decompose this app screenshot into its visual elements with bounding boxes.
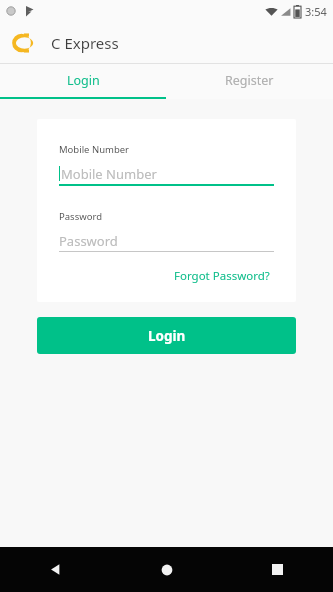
staticText: Password xyxy=(59,210,102,223)
staticText: Mobile Number xyxy=(61,165,157,183)
staticText: Forgot Password? xyxy=(174,268,270,284)
button[interactable]: Register xyxy=(166,64,333,97)
button[interactable]: Login xyxy=(0,64,166,97)
staticText: C Express xyxy=(51,33,119,53)
staticText: 3:54 xyxy=(305,4,327,19)
staticText: Register xyxy=(225,72,274,89)
button[interactable]: Login xyxy=(37,317,296,354)
button[interactable]: Back xyxy=(0,547,111,592)
button[interactable]: Home xyxy=(111,547,222,592)
staticText: Password xyxy=(59,232,118,250)
button[interactable]: Password xyxy=(59,230,274,251)
button[interactable]: Mobile Number xyxy=(59,163,274,184)
staticText: Mobile Number xyxy=(59,143,130,156)
staticText: Login xyxy=(148,327,186,345)
button[interactable]: Forgot Password? xyxy=(170,264,274,288)
button[interactable]: Recents xyxy=(222,547,333,592)
staticText: Login xyxy=(67,72,100,89)
